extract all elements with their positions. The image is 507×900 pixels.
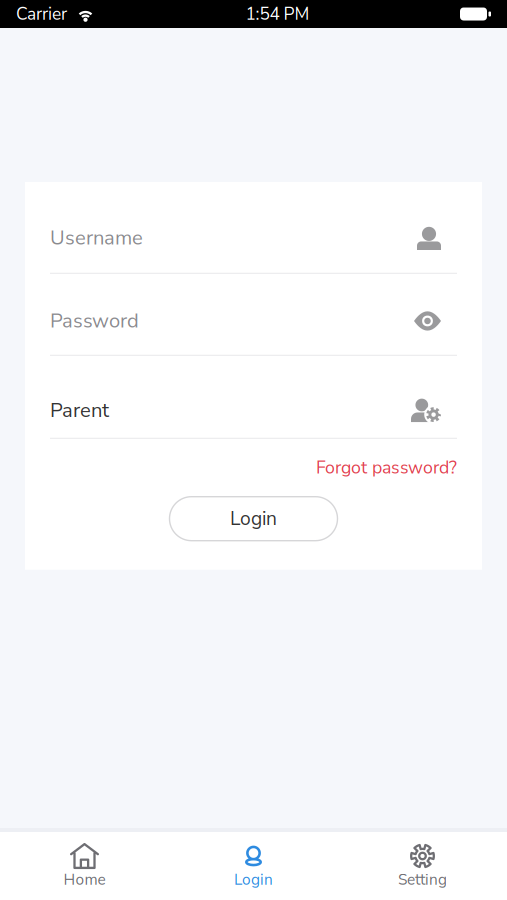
staticText: 1:54 PM — [245, 2, 309, 26]
staticText: Carrier — [16, 2, 67, 26]
button[interactable]: Forgot password? — [316, 455, 457, 480]
button[interactable]: Login — [169, 832, 338, 900]
staticText: Forgot password? — [316, 455, 457, 480]
staticText: Login — [230, 506, 277, 532]
staticText: Setting — [398, 869, 447, 890]
staticText: Password — [50, 307, 139, 335]
staticText: Username — [50, 224, 143, 252]
button[interactable]: Home — [0, 832, 169, 900]
button[interactable]: Login — [169, 497, 337, 541]
button[interactable]: Setting — [338, 832, 507, 900]
staticText: Parent — [50, 397, 109, 424]
staticText: Login — [234, 869, 273, 890]
staticText: Home — [63, 869, 105, 890]
